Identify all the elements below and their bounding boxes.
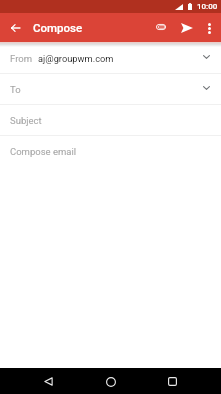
staticText: Subject — [10, 115, 42, 126]
staticText: To — [10, 84, 21, 95]
staticText: Compose email — [10, 146, 77, 157]
button[interactable]: Attach file — [149, 16, 172, 39]
button[interactable]: Compose email — [0, 136, 221, 166]
button[interactable]: Home — [98, 369, 123, 394]
staticText: From — [10, 53, 33, 64]
button[interactable]: Subject — [0, 105, 221, 136]
button[interactable]: Expand — [199, 51, 213, 65]
button[interactable]: Recent apps — [160, 369, 185, 394]
button[interactable]: Navigate up — [3, 16, 27, 40]
button[interactable]: More options — [198, 17, 220, 39]
button[interactable]: Back — [36, 369, 61, 394]
button[interactable]: To — [0, 74, 221, 105]
button[interactable]: Expand — [199, 82, 213, 96]
staticText: aj@groupwm.com — [38, 53, 114, 64]
staticText: 10:00 — [197, 2, 218, 11]
button[interactable]: From — [0, 43, 221, 74]
staticText: Compose — [33, 21, 83, 34]
button[interactable]: Send — [175, 16, 198, 39]
